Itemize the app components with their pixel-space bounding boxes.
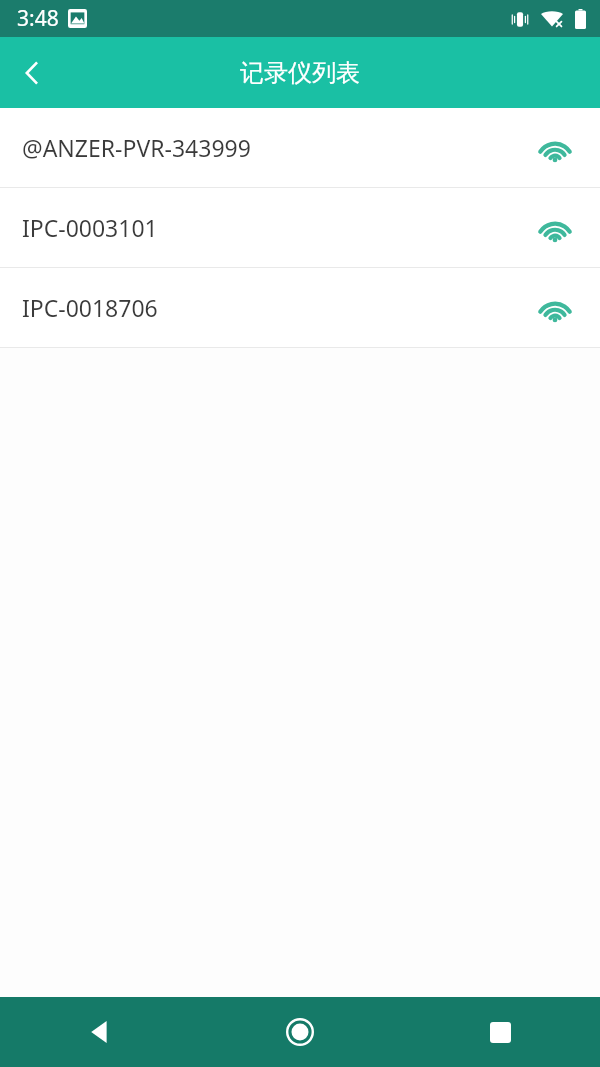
staticText: 记录仪列表 [240, 58, 360, 88]
button[interactable]: IPC-0018706 [0, 268, 600, 348]
button[interactable]: IPC-0003101 [0, 188, 600, 268]
button[interactable]: Back [0, 997, 200, 1067]
staticText: IPC-0003101 [22, 212, 158, 243]
staticText: 3:48 [17, 4, 59, 33]
button[interactable]: Home [200, 997, 400, 1067]
staticText: IPC-0018706 [22, 292, 158, 323]
button[interactable]: Recent apps [400, 997, 600, 1067]
staticText: @ANZER-PVR-343999 [22, 132, 251, 163]
button[interactable]: @ANZER-PVR-343999 [0, 108, 600, 188]
button[interactable]: Back [0, 41, 64, 105]
